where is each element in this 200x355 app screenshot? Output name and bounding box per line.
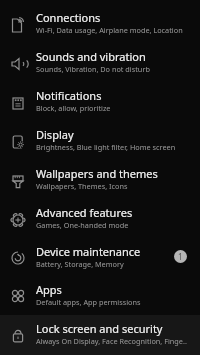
staticText: Device maintenance (36, 244, 141, 259)
staticText: Block, allow, prioritize (36, 103, 111, 113)
staticText: Lock screen and security (36, 321, 163, 336)
staticText: Notifications (36, 88, 102, 103)
button[interactable]: Apps (0, 277, 200, 315)
staticText: Wi-Fi, Data usage, Airplane mode, Locati… (36, 25, 183, 35)
button[interactable]: Connections (0, 5, 200, 44)
button[interactable]: Sounds and vibration (0, 44, 200, 83)
staticText: Default apps, App permissions (36, 297, 141, 307)
staticText: Wallpapers and themes (36, 166, 158, 181)
button[interactable]: Lock screen and security (0, 315, 200, 355)
staticText: Wallpapers, Themes, Icons (36, 181, 128, 191)
staticText: Apps (36, 282, 62, 297)
staticText: Games, One-handed mode (36, 220, 129, 230)
button[interactable]: Advanced features (0, 200, 200, 239)
staticText: Display (36, 127, 74, 142)
staticText: Always On Display, Face Recognition, Fin… (36, 336, 187, 346)
staticText: Connections (36, 10, 101, 25)
staticText: Battery, Storage, Memory (36, 259, 124, 269)
staticText: 1 (178, 251, 183, 262)
button[interactable]: Display (0, 122, 200, 161)
staticText: Sounds, Vibration, Do not disturb (36, 64, 150, 74)
button[interactable]: Wallpapers and themes (0, 161, 200, 200)
staticText: Advanced features (36, 205, 133, 220)
staticText: Sounds and vibration (36, 49, 146, 64)
button[interactable]: Device maintenance (0, 239, 200, 277)
staticText: Brightness, Blue light filter, Home scre… (36, 142, 176, 152)
button[interactable]: Notifications (0, 83, 200, 122)
